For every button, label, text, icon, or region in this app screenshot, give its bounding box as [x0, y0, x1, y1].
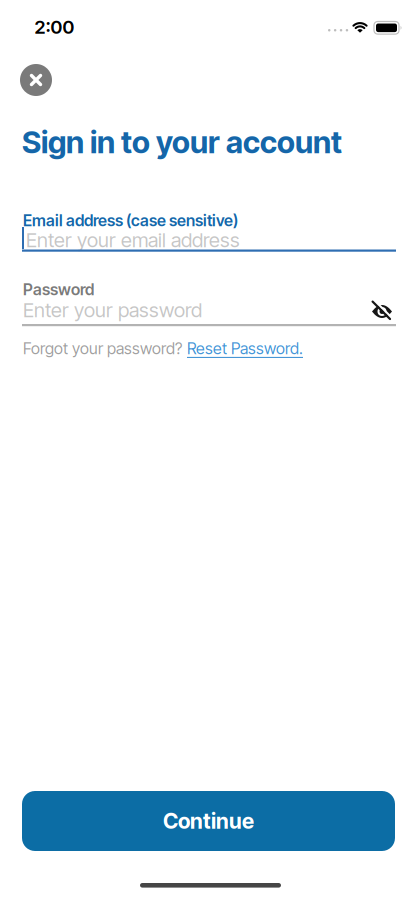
button[interactable]: Continue — [22, 791, 395, 851]
staticText: Forgot your password? — [23, 339, 182, 358]
button[interactable]: Password — [23, 298, 363, 322]
button[interactable]: Close — [20, 64, 52, 96]
staticText: Email address (case sensitive) — [23, 211, 238, 230]
staticText: Enter your email address — [26, 228, 240, 252]
button[interactable]: Email address — [26, 228, 400, 252]
button[interactable]: Show password — [371, 301, 393, 322]
staticText: Reset Password. — [187, 339, 303, 358]
staticText: Enter your password — [23, 298, 202, 322]
staticText: Password — [23, 280, 94, 299]
staticText: Sign in to your account — [22, 124, 342, 160]
button[interactable]: Reset Password. — [187, 339, 303, 358]
staticText: 2:00 — [34, 16, 74, 38]
staticText: Continue — [163, 808, 254, 834]
